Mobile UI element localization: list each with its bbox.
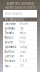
staticText: License (5, 54, 15, 58)
staticText: today (20, 45, 27, 49)
staticText: text (20, 27, 24, 30)
staticText: 1.2.0 (20, 59, 28, 63)
staticText: Tags (5, 64, 10, 67)
staticText: Summary (5, 27, 15, 30)
staticText: Version (5, 59, 16, 63)
staticText: Overview (5, 22, 16, 25)
staticText: link (20, 40, 25, 44)
staticText: team (20, 50, 26, 53)
staticText: list (20, 64, 24, 67)
staticText: Try the built-in filters (5, 6, 35, 9)
staticText: Details (5, 31, 14, 35)
staticText: note (20, 36, 27, 39)
staticText: Search the directory (6, 2, 33, 5)
staticText: Author (5, 50, 15, 53)
staticText: Source (5, 40, 14, 44)
staticText: Updated (5, 45, 17, 49)
staticText: Notes (5, 36, 13, 39)
staticText: value (20, 31, 27, 35)
staticText: shown (20, 22, 29, 25)
staticText: Filter results (5, 12, 22, 15)
staticText: MIT (20, 54, 24, 58)
staticText: All categories (5, 18, 24, 21)
